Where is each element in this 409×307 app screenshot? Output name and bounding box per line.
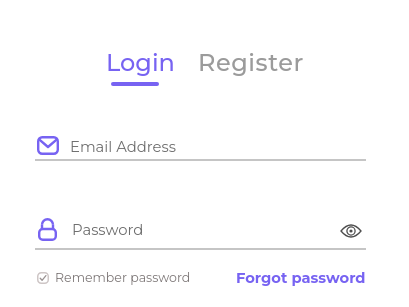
button[interactable]: Login	[106, 48, 175, 77]
staticText: Remember password	[55, 270, 191, 285]
staticText: Email Address	[70, 138, 176, 156]
staticText: Register	[198, 48, 304, 77]
button[interactable]: Forgot password	[236, 269, 366, 287]
staticText: Login	[106, 48, 175, 77]
button[interactable]	[334, 214, 367, 247]
staticText: Forgot password	[236, 269, 366, 287]
staticText: Password	[72, 221, 144, 239]
button[interactable]: Remember password	[37, 268, 191, 285]
button[interactable]: Register	[198, 48, 304, 77]
